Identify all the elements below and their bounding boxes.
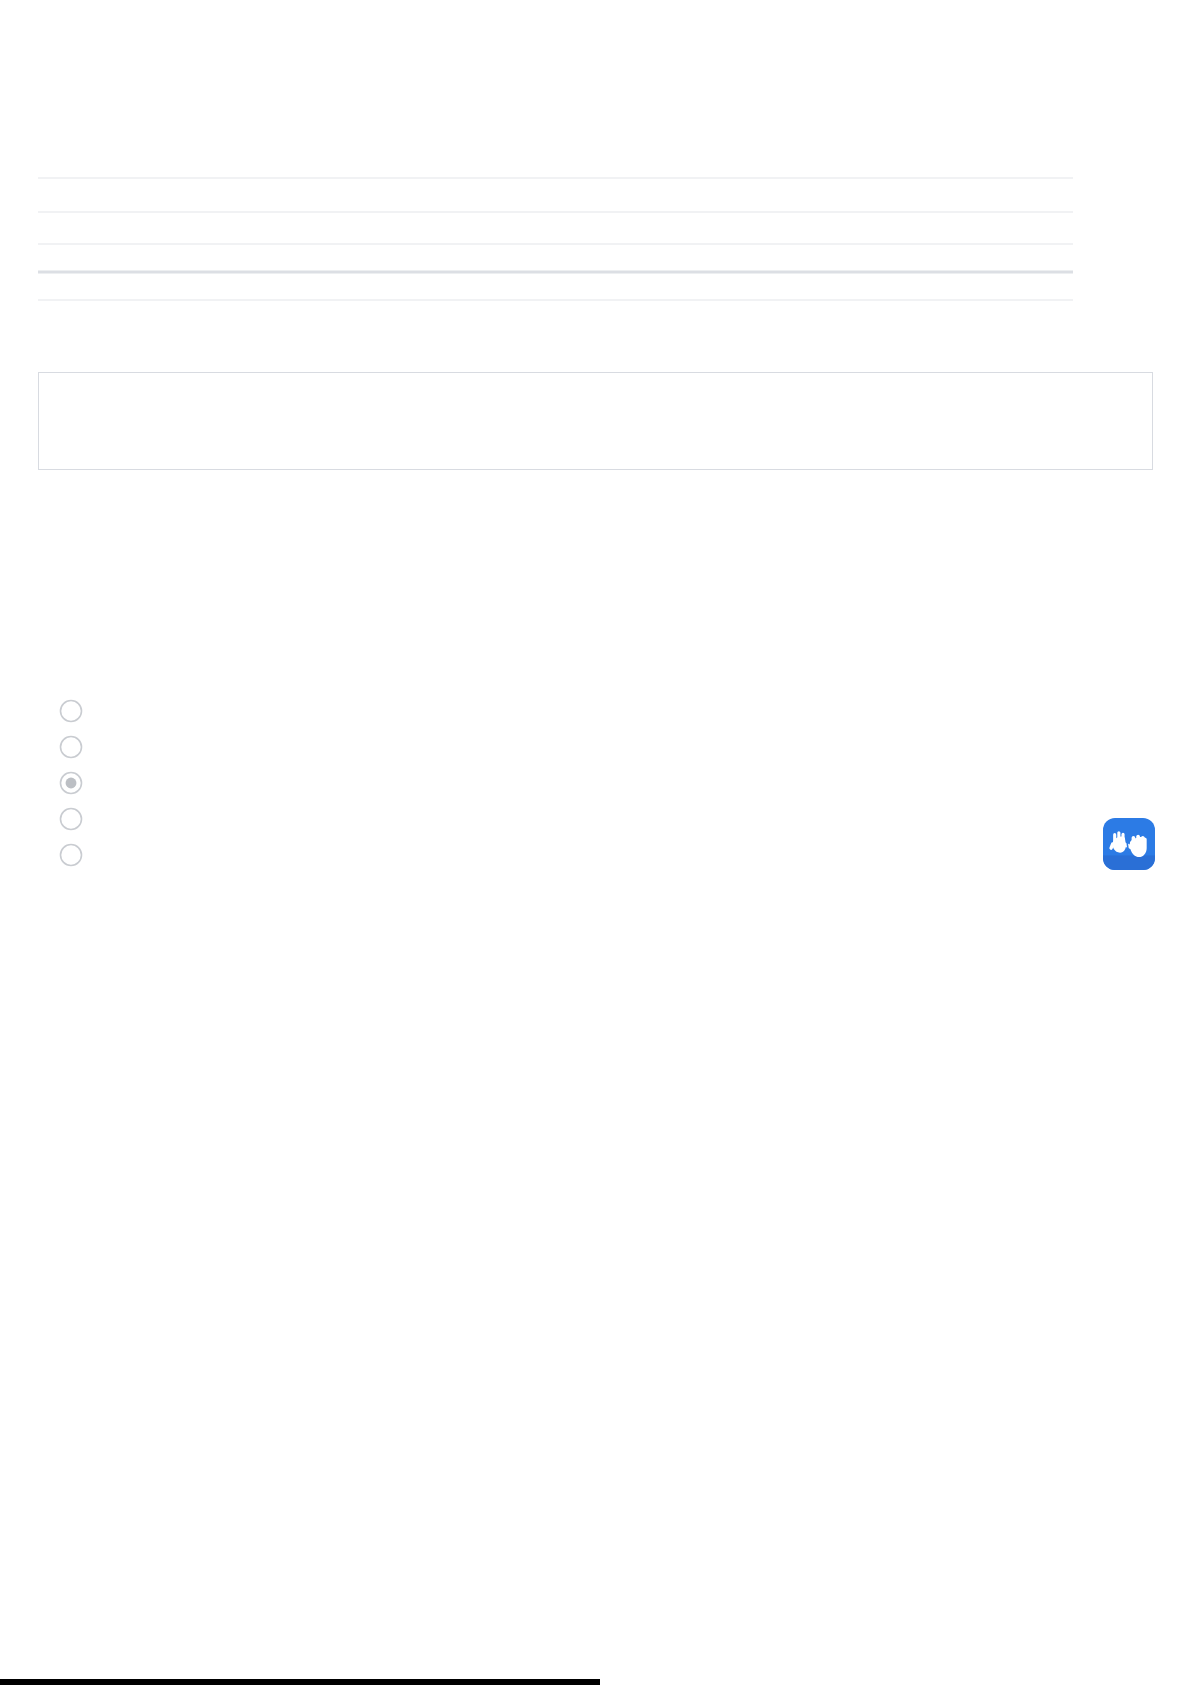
- button[interactable]: Option 5: [59, 843, 83, 867]
- button[interactable]: [38, 372, 1153, 470]
- button[interactable]: Option 4: [59, 807, 83, 831]
- button[interactable]: Option 1: [59, 699, 83, 723]
- button[interactable]: Option 2: [59, 735, 83, 759]
- button[interactable]: Option 3: [59, 771, 83, 795]
- button[interactable]: Sign language accessibility: [1103, 818, 1155, 870]
